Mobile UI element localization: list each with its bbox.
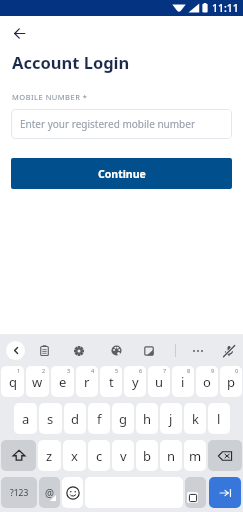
button[interactable]: s bbox=[39, 403, 62, 434]
staticText: s bbox=[47, 410, 54, 428]
staticText: Account Login bbox=[12, 51, 130, 73]
button[interactable]: l bbox=[208, 403, 230, 434]
button[interactable]: t bbox=[100, 366, 122, 397]
staticText: a bbox=[22, 410, 30, 428]
button[interactable]: b bbox=[136, 440, 158, 471]
staticText: 8 bbox=[187, 367, 191, 374]
staticText: 6 bbox=[139, 367, 143, 374]
staticText: 7 bbox=[163, 367, 167, 374]
button[interactable]: Continue bbox=[11, 158, 232, 189]
button[interactable]: c bbox=[88, 440, 110, 471]
button[interactable]: g bbox=[112, 403, 134, 434]
staticText: j bbox=[169, 410, 173, 428]
button[interactable]: d bbox=[64, 403, 86, 434]
staticText: @ bbox=[45, 486, 54, 500]
staticText: 9 bbox=[211, 367, 215, 374]
button[interactable]: Enter bbox=[209, 477, 241, 508]
button[interactable]: Emoji bbox=[62, 477, 83, 508]
button[interactable]: Clipboard bbox=[36, 342, 53, 359]
button[interactable]: i bbox=[172, 366, 194, 397]
button[interactable]: p bbox=[220, 366, 242, 397]
staticText: 11:11 bbox=[212, 1, 239, 15]
staticText: d bbox=[71, 410, 79, 428]
staticText: k bbox=[192, 410, 199, 428]
staticText: c bbox=[96, 447, 103, 465]
staticText: b bbox=[143, 447, 151, 465]
staticText: MOBILE NUMBER * bbox=[12, 92, 88, 102]
staticText: Enter your registered mobile number bbox=[20, 117, 196, 131]
staticText: 2 bbox=[42, 367, 46, 374]
button[interactable]: k bbox=[184, 403, 206, 434]
button[interactable]: Backspace bbox=[208, 440, 242, 471]
staticText: m bbox=[189, 447, 202, 465]
button[interactable]: Stickers bbox=[140, 342, 157, 359]
staticText: r bbox=[84, 373, 90, 391]
button[interactable]: n bbox=[160, 440, 182, 471]
staticText: 0 bbox=[235, 367, 239, 374]
staticText: w bbox=[32, 373, 43, 391]
button[interactable]: At sign bbox=[39, 477, 60, 508]
staticText: q bbox=[9, 373, 17, 391]
button[interactable]: u bbox=[148, 366, 170, 397]
staticText: i bbox=[181, 373, 185, 391]
button[interactable]: o bbox=[196, 366, 218, 397]
staticText: p bbox=[227, 373, 235, 391]
staticText: 4 bbox=[91, 367, 95, 374]
button[interactable]: Symbols bbox=[1, 477, 37, 508]
button[interactable]: x bbox=[63, 440, 86, 471]
staticText: z bbox=[46, 447, 53, 465]
button[interactable]: Theme bbox=[108, 342, 125, 359]
staticText: e bbox=[59, 373, 67, 391]
button[interactable]: f bbox=[88, 403, 110, 434]
staticText: x bbox=[71, 447, 78, 465]
staticText: y bbox=[132, 373, 139, 391]
button[interactable]: z bbox=[38, 440, 61, 471]
staticText: h bbox=[143, 410, 152, 428]
staticText: ?123 bbox=[10, 487, 29, 499]
staticText: u bbox=[155, 373, 164, 391]
button[interactable]: j bbox=[160, 403, 182, 434]
button[interactable]: Shift bbox=[1, 440, 36, 471]
staticText: 5 bbox=[115, 367, 119, 374]
button[interactable]: e bbox=[51, 366, 74, 397]
button[interactable]: w bbox=[26, 366, 49, 397]
button[interactable]: Back bbox=[8, 22, 30, 44]
button[interactable]: q bbox=[1, 366, 24, 397]
button[interactable]: a bbox=[14, 403, 37, 434]
staticText: o bbox=[203, 373, 211, 391]
staticText: f bbox=[97, 410, 102, 428]
button[interactable]: Settings bbox=[70, 342, 87, 359]
button[interactable]: h bbox=[136, 403, 158, 434]
staticText: v bbox=[120, 447, 127, 465]
staticText: 1 bbox=[17, 367, 21, 374]
button[interactable]: r bbox=[76, 366, 98, 397]
staticText: n bbox=[167, 447, 176, 465]
button[interactable]: m bbox=[184, 440, 206, 471]
staticText: g bbox=[119, 410, 127, 428]
button[interactable]: Close keyboard toolbar bbox=[6, 341, 25, 360]
button[interactable]: Voice input off bbox=[220, 342, 237, 359]
button[interactable]: v bbox=[112, 440, 134, 471]
staticText: Continue bbox=[98, 167, 146, 181]
button[interactable]: Enter your registered mobile number bbox=[11, 109, 232, 139]
button[interactable]: Resize keyboard bbox=[185, 477, 206, 508]
button[interactable]: More options bbox=[189, 342, 206, 359]
staticText: t bbox=[109, 373, 114, 391]
button[interactable]: y bbox=[124, 366, 146, 397]
staticText: 3 bbox=[67, 367, 71, 374]
staticText: l bbox=[217, 410, 221, 428]
